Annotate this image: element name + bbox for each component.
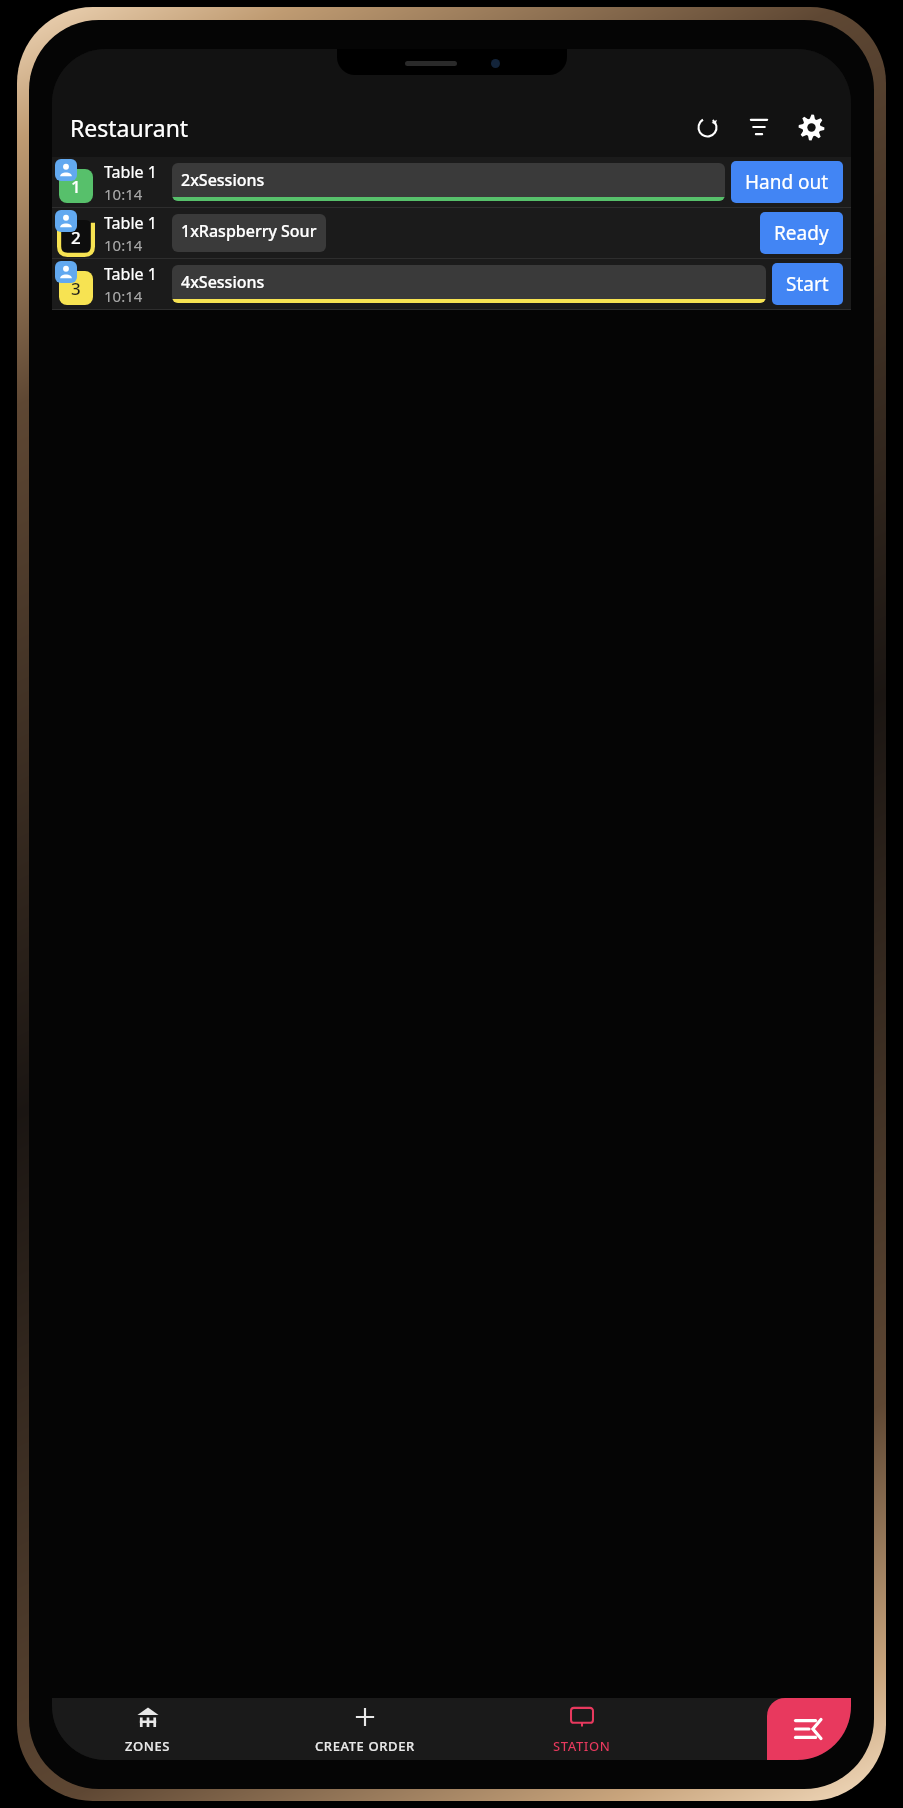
staticText: 3 xyxy=(71,277,81,300)
staticText: Table 1 xyxy=(104,263,157,285)
staticText: Restaurant xyxy=(70,112,189,143)
staticText: 2xSessions xyxy=(181,169,265,191)
button[interactable]: Refresh xyxy=(685,105,729,149)
button[interactable]: CREATE ORDER xyxy=(244,1698,485,1760)
button[interactable]: Settings xyxy=(789,105,833,149)
staticText: 2 xyxy=(71,226,81,249)
button[interactable]: 3 xyxy=(52,259,851,310)
button[interactable]: 2 xyxy=(52,208,851,259)
staticText: CREATE ORDER xyxy=(315,1737,415,1755)
staticText: Table 1 xyxy=(104,212,157,234)
staticText: 10:14 xyxy=(104,184,143,204)
button[interactable]: Start xyxy=(772,263,843,305)
button[interactable]: Hand out xyxy=(731,161,843,203)
staticText: 1 xyxy=(71,175,81,198)
staticText: Ready xyxy=(774,220,829,246)
staticText: Table 1 xyxy=(104,161,157,183)
button[interactable]: 2xSessions xyxy=(172,163,725,201)
staticText: ZONES xyxy=(125,1737,171,1755)
button[interactable]: Filter xyxy=(737,105,781,149)
staticText: 10:14 xyxy=(104,286,143,306)
button[interactable]: 1 xyxy=(52,157,851,208)
staticText: 10:14 xyxy=(104,235,143,255)
button[interactable]: 1xRaspberry Sour xyxy=(172,214,326,252)
button[interactable]: ZONES xyxy=(52,1698,244,1760)
staticText: Start xyxy=(786,271,829,297)
button[interactable]: Ready xyxy=(760,212,843,254)
button[interactable]: 4xSessions xyxy=(172,265,766,303)
staticText: Hand out xyxy=(745,169,829,195)
button[interactable]: STATION xyxy=(485,1698,678,1760)
staticText: STATION xyxy=(553,1737,611,1755)
staticText: 1xRaspberry Sour xyxy=(181,220,317,242)
button[interactable]: Collapse menu xyxy=(767,1698,851,1760)
staticText: 4xSessions xyxy=(181,271,265,293)
